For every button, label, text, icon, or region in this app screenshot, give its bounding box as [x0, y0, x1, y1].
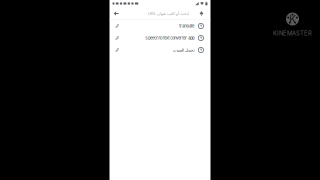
button[interactable]: Voice search: [196, 7, 206, 20]
button[interactable]: تحويل الصوت: [109, 44, 210, 56]
staticText: ابحث أو اكتب عنوان URL: [147, 11, 188, 16]
staticText: K: [289, 12, 296, 25]
staticText: KINEMASTER: [273, 30, 312, 37]
staticText: translate: [179, 24, 194, 28]
button[interactable]: Speech to text converter app: [109, 32, 210, 44]
button[interactable]: Back: [109, 7, 122, 20]
staticText: Speech to text converter app: [145, 36, 194, 40]
button[interactable]: translate: [109, 20, 210, 32]
staticText: تحويل الصوت: [172, 48, 194, 52]
